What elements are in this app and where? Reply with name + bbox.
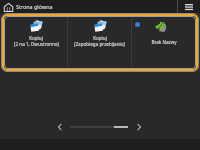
staticText: Brak Nazwy (151, 39, 177, 45)
staticText: Strona główna (16, 3, 53, 10)
button[interactable]: Home (3, 2, 13, 12)
button[interactable]: Previous (54, 121, 66, 133)
button[interactable]: Kopiuj (68, 17, 131, 68)
staticText: Kopiuj (93, 35, 107, 41)
staticText: Kopiuj (29, 35, 43, 41)
button[interactable]: Brak Nazwy (132, 17, 195, 68)
staticText: (Zapobiega przebijaniu) (74, 41, 125, 47)
button[interactable]: Kopiuj (5, 17, 67, 68)
button[interactable]: Next (133, 121, 145, 133)
staticText: (2 na 1, Dwustronne) (14, 41, 59, 47)
button[interactable]: Menu (178, 0, 200, 13)
